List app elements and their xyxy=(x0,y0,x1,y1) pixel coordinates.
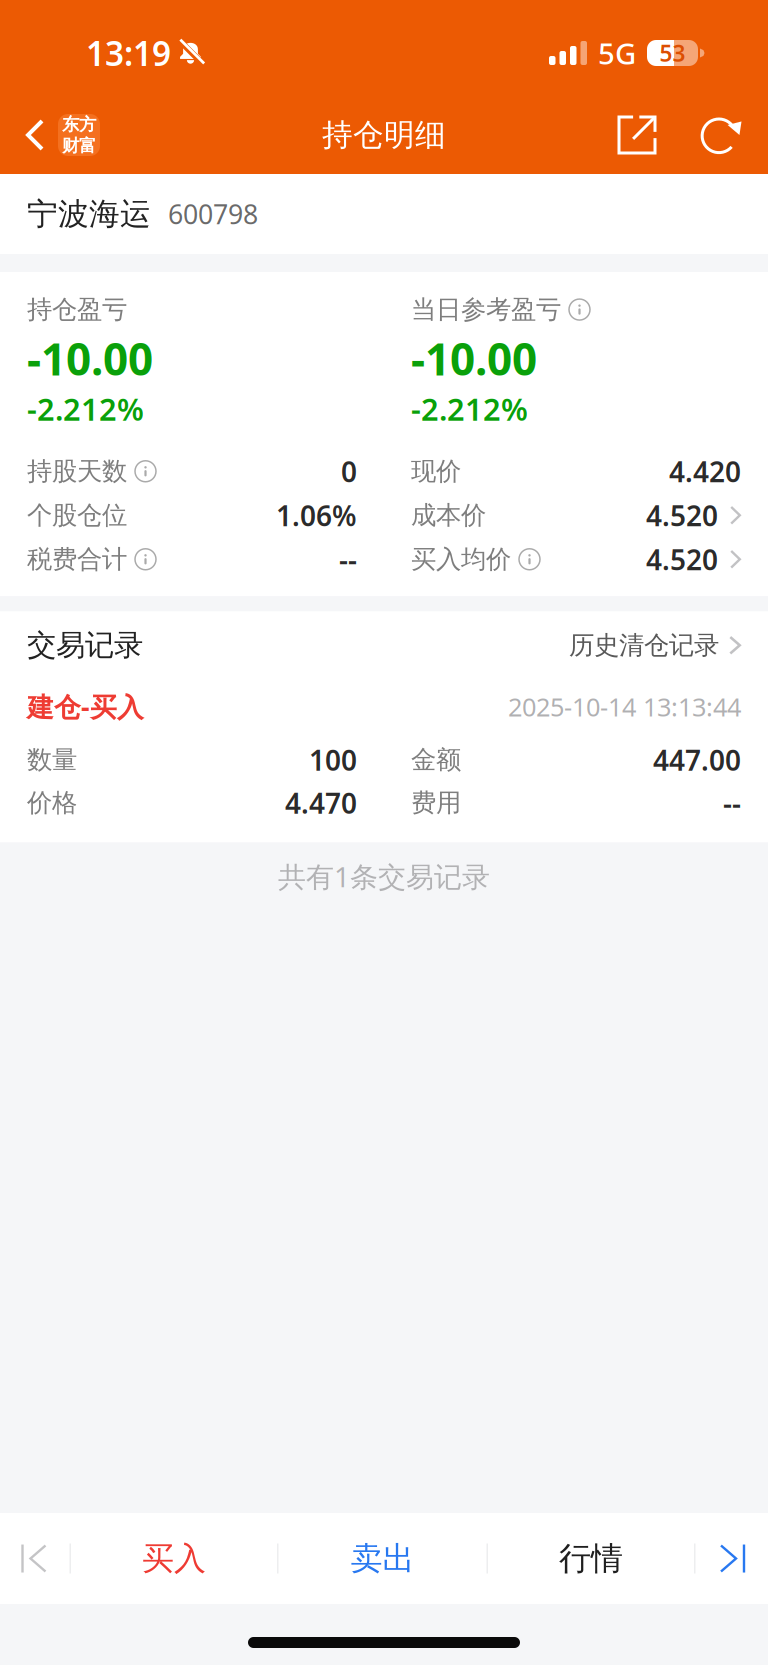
button[interactable]: Refresh xyxy=(667,100,751,170)
staticText: 4.470 xyxy=(285,784,357,821)
button[interactable]: Share xyxy=(607,100,667,170)
staticText: 历史清仓记录 xyxy=(569,630,719,661)
staticText: 金额 xyxy=(411,744,461,775)
staticText: 现价 xyxy=(411,456,461,487)
staticText: 买入均价 xyxy=(411,544,511,575)
staticText: -- xyxy=(723,784,741,821)
staticText: 2025-10-14 13:13:44 xyxy=(508,690,741,724)
staticText: -10.00 xyxy=(411,329,537,387)
button[interactable]: 历史清仓记录 xyxy=(569,618,741,672)
staticText: 4.420 xyxy=(669,453,741,490)
staticText: 数量 xyxy=(27,744,77,775)
staticText: 持仓盈亏 xyxy=(27,294,127,325)
staticText: 5G xyxy=(598,33,636,72)
staticText: 持股天数 xyxy=(27,456,127,487)
button[interactable]: Back to 东方财富 xyxy=(0,96,114,174)
staticText: 447.00 xyxy=(653,741,741,778)
button[interactable]: 买入 xyxy=(71,1513,277,1604)
staticText: 价格 xyxy=(27,787,77,818)
staticText: 卖出 xyxy=(350,1539,414,1578)
staticText: 53 xyxy=(659,38,685,68)
staticText: 费用 xyxy=(411,787,461,818)
staticText: 财富 xyxy=(62,135,96,156)
staticText: 0 xyxy=(341,453,357,490)
staticText: 4.520 xyxy=(646,497,718,534)
staticText: 个股仓位 xyxy=(27,500,127,531)
button[interactable]: Next stock xyxy=(695,1513,768,1604)
staticText: 100 xyxy=(309,741,357,778)
staticText: 买入 xyxy=(142,1539,206,1578)
staticText: 4.520 xyxy=(646,541,718,578)
staticText: 持仓明细 xyxy=(322,116,446,154)
staticText: -10.00 xyxy=(27,329,153,387)
staticText: 建仓-买入 xyxy=(27,689,144,724)
staticText: 行情 xyxy=(559,1539,623,1578)
staticText: 成本价 xyxy=(411,500,486,531)
staticText: 600798 xyxy=(168,196,258,232)
staticText: 当日参考盈亏 xyxy=(411,294,561,325)
staticText: -- xyxy=(339,541,357,578)
staticText: 宁波海运 xyxy=(27,195,151,233)
staticText: 东方 xyxy=(62,114,96,135)
button[interactable]: Previous stock xyxy=(0,1513,69,1604)
staticText: 共有1条交易记录 xyxy=(278,858,490,895)
button[interactable]: 行情 xyxy=(488,1513,694,1604)
staticText: 税费合计 xyxy=(27,544,127,575)
button[interactable]: 卖出 xyxy=(278,1513,486,1604)
staticText: -2.212% xyxy=(27,388,144,429)
staticText: 交易记录 xyxy=(27,627,143,663)
staticText: 13:19 xyxy=(86,31,171,75)
staticText: 1.06% xyxy=(276,497,357,534)
staticText: -2.212% xyxy=(411,388,528,429)
